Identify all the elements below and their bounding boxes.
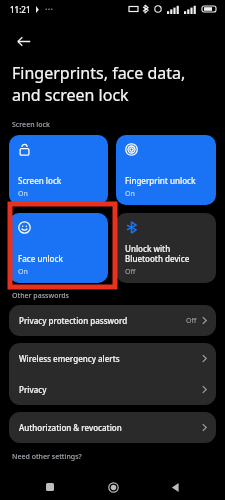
staticText: Unlock with Bluetooth device	[125, 243, 190, 264]
staticText: Other passwords	[12, 291, 69, 301]
staticText: On	[18, 189, 28, 199]
staticText: Off	[186, 316, 197, 326]
staticText: On	[125, 189, 135, 199]
button[interactable]: Screen lock	[9, 135, 108, 205]
button[interactable]: Authorization & revocation	[9, 412, 216, 443]
staticText: Privacy protection password	[19, 315, 186, 326]
button[interactable]: Unlock with Bluetooth device	[116, 213, 216, 283]
staticText: Wireless emergency alerts	[19, 353, 202, 364]
staticText: On	[18, 267, 28, 277]
button[interactable]: Back	[8, 26, 38, 56]
button[interactable]: Face unlock	[9, 213, 108, 283]
staticText: Privacy	[19, 384, 202, 395]
button[interactable]: Wireless emergency alerts	[9, 343, 216, 374]
button[interactable]: Home	[100, 474, 126, 500]
button[interactable]: Back	[162, 474, 188, 500]
button[interactable]: Recents	[37, 474, 63, 500]
staticText: Fingerprint unlock	[125, 175, 196, 186]
staticText: Face unlock	[18, 253, 63, 264]
button[interactable]: Privacy protection password	[9, 305, 216, 336]
staticText: Need other settings?	[12, 452, 82, 462]
staticText: Fingerprints, face data, and screen lock	[12, 62, 186, 106]
staticText: Off	[125, 267, 136, 277]
button[interactable]: Privacy	[9, 374, 216, 405]
staticText: Authorization & revocation	[19, 422, 202, 433]
staticText: Screen lock	[18, 175, 62, 186]
staticText: Screen lock	[12, 120, 50, 130]
staticText: 11:21	[10, 4, 31, 15]
button[interactable]: Fingerprint unlock	[116, 135, 216, 205]
